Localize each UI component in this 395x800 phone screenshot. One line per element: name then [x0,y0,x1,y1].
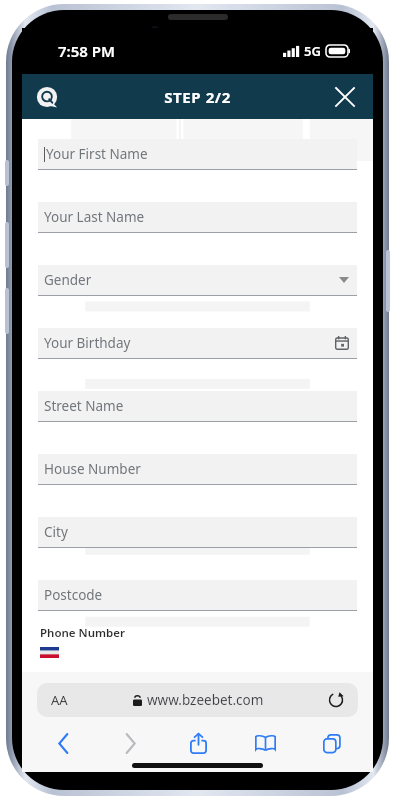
button[interactable]: Share [183,728,213,758]
button[interactable]: Postcode [38,580,357,611]
staticText: Gender [44,271,339,289]
staticText: Postcode [44,586,349,604]
button[interactable]: AA [37,683,358,717]
button[interactable]: Your Birthday [38,328,357,359]
staticText: House Number [44,460,349,478]
button[interactable]: Tabs [317,728,347,758]
button[interactable]: Your Last Name [38,202,357,233]
button[interactable]: Forward [115,728,145,758]
staticText: Your Birthday [44,334,335,352]
staticText: City [44,523,349,541]
button[interactable]: House Number [38,454,357,485]
button[interactable]: Reload [328,692,344,708]
staticText: 5G [304,42,321,60]
button[interactable]: Menu [34,84,60,110]
button[interactable]: Bookmarks [250,728,280,758]
button[interactable]: Gender [38,265,357,296]
staticText: www.bzeebet.com [147,691,264,709]
button[interactable]: Your First Name [38,139,357,170]
staticText: 7:58 PM [58,41,115,61]
staticText: Street Name [44,397,349,415]
staticText: Your First Name [46,145,349,163]
button[interactable]: Street Name [38,391,357,422]
staticText: Phone Number [40,625,125,641]
button[interactable]: Close [331,83,359,111]
staticText: STEP 2/2 [164,87,231,107]
staticText: Your Last Name [44,208,349,226]
button[interactable]: City [38,517,357,548]
staticText: AA [51,691,68,709]
button[interactable]: Back [48,728,78,758]
